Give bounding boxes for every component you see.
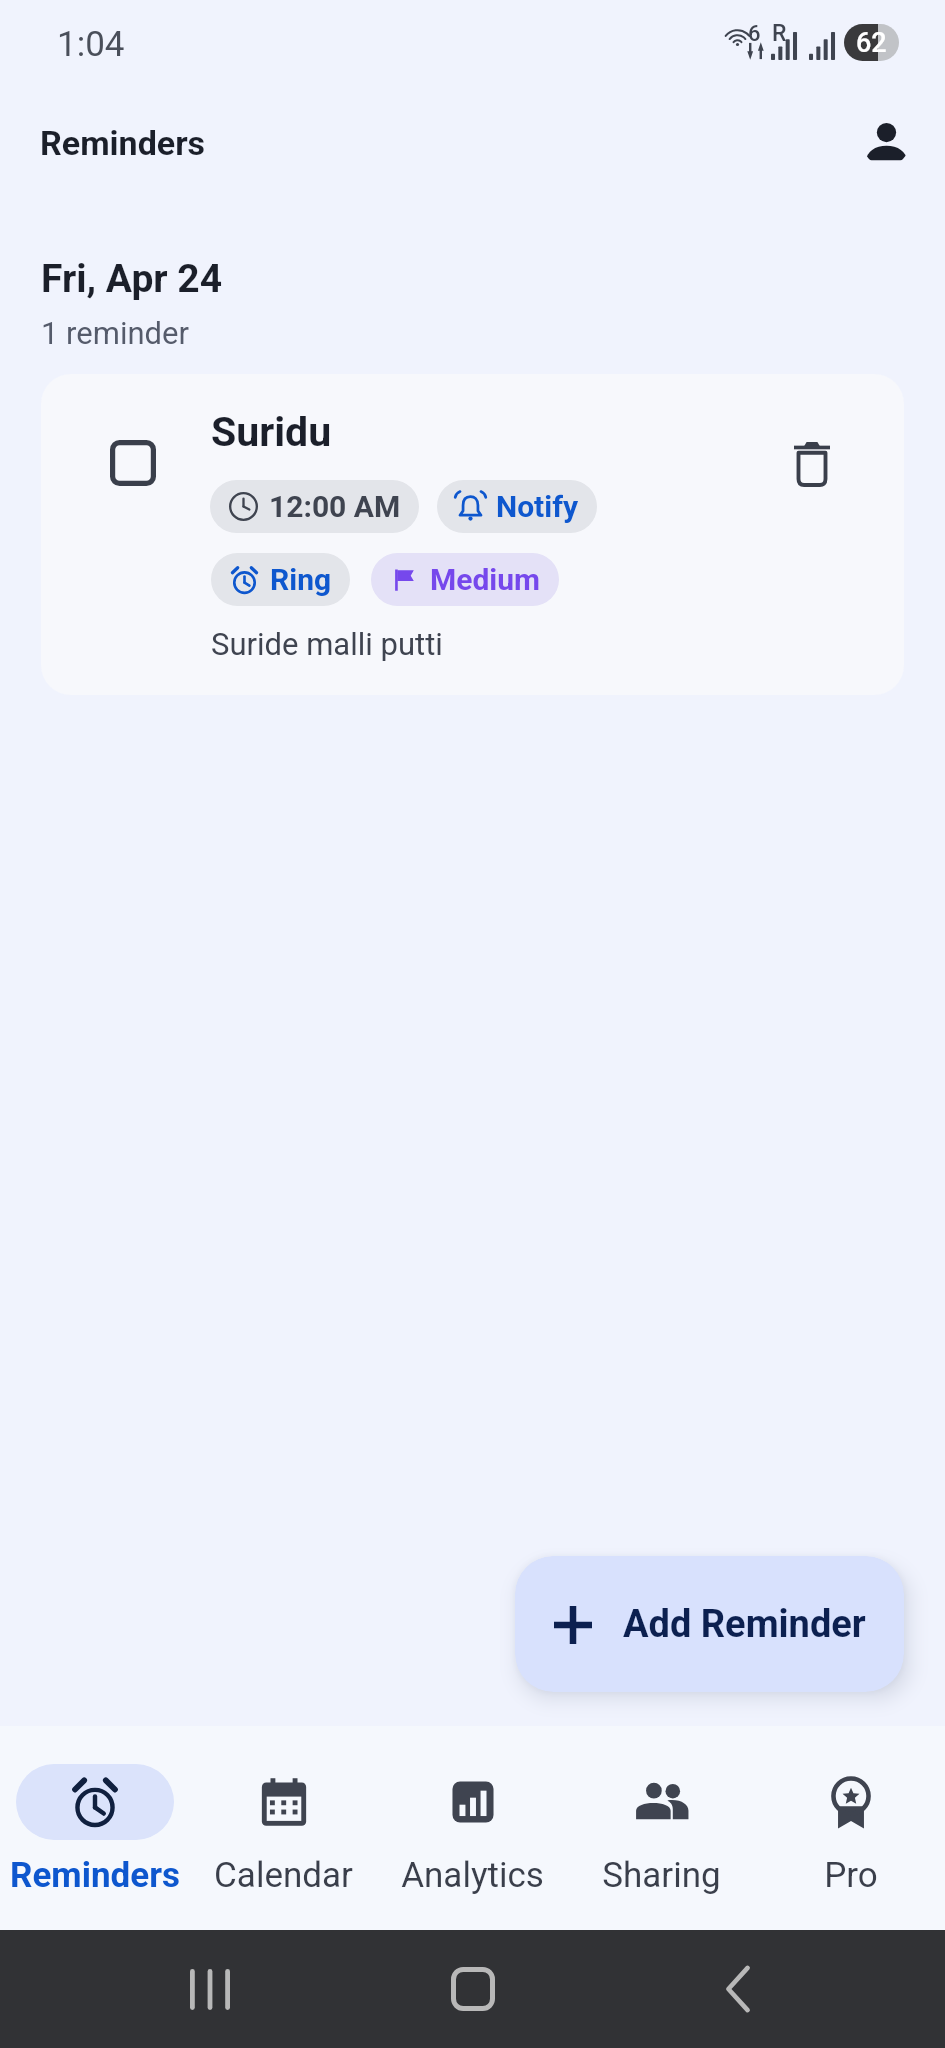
button[interactable]: Account xyxy=(862,118,910,166)
button[interactable]: Pro xyxy=(756,1726,945,1896)
staticText: Notify xyxy=(496,489,579,524)
staticText: 1:04 xyxy=(57,24,125,65)
button[interactable]: Notify xyxy=(437,480,597,533)
button[interactable]: Mark complete xyxy=(110,440,156,486)
staticText: 62 xyxy=(856,27,887,59)
staticText: Sharing xyxy=(602,1855,721,1896)
button[interactable]: Add Reminder xyxy=(515,1556,904,1692)
staticText: 12:00 AM xyxy=(269,489,401,524)
staticText: Pro xyxy=(824,1855,878,1896)
staticText: 6 xyxy=(748,21,761,47)
button[interactable]: 12:00 AM xyxy=(210,480,419,533)
button[interactable]: Medium xyxy=(371,553,559,606)
button[interactable]: Calendar xyxy=(189,1726,378,1896)
button[interactable]: Back xyxy=(703,1954,773,2024)
button[interactable]: Analytics xyxy=(378,1726,567,1896)
button[interactable]: Mark complete xyxy=(41,374,904,695)
staticText: Suride malli putti xyxy=(211,626,443,662)
staticText: Suridu xyxy=(211,408,332,456)
button[interactable]: Reminders xyxy=(0,1726,189,1896)
staticText: Ring xyxy=(270,562,332,597)
staticText: Add Reminder xyxy=(623,1602,866,1647)
staticText: Medium xyxy=(430,562,541,597)
staticText: R xyxy=(772,20,787,47)
staticText: Fri, Apr 24 xyxy=(41,256,223,302)
staticText: Calendar xyxy=(214,1855,353,1896)
staticText: Analytics xyxy=(401,1855,544,1896)
button[interactable]: Home xyxy=(438,1954,508,2024)
staticText: Reminders xyxy=(10,1855,180,1896)
button[interactable]: Delete xyxy=(782,433,842,493)
staticText: Reminders xyxy=(40,123,206,163)
staticText: 1 reminder xyxy=(41,315,190,351)
button[interactable]: Recents xyxy=(175,1954,245,2024)
button[interactable]: Ring xyxy=(211,553,350,606)
button[interactable]: Sharing xyxy=(567,1726,756,1896)
